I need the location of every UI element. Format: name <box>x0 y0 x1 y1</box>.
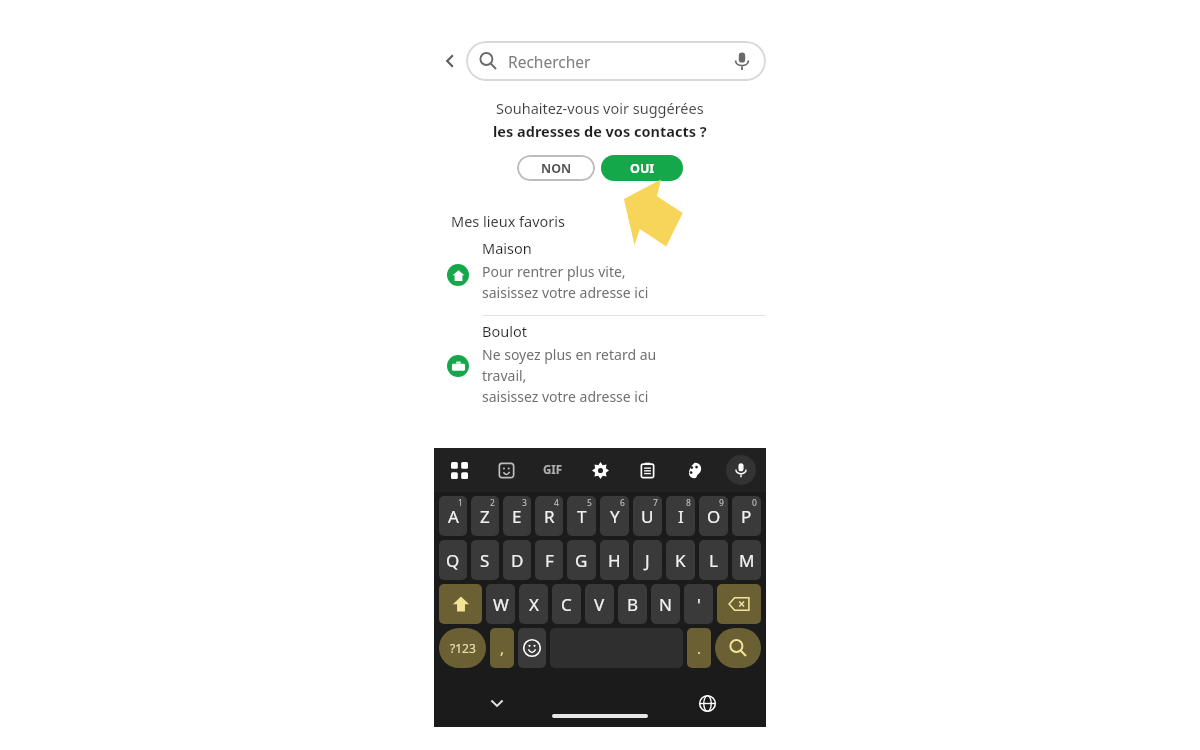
button[interactable]: K <box>666 540 695 580</box>
button[interactable]: C <box>552 584 581 624</box>
staticText: E <box>512 505 522 528</box>
button[interactable]: V <box>585 584 614 624</box>
button[interactable]: G <box>567 540 596 580</box>
button[interactable]: Thèmes <box>679 455 709 485</box>
staticText: Ne soyez plus en retard au <box>482 345 657 364</box>
button[interactable]: L <box>699 540 728 580</box>
staticText: 9 <box>719 497 724 509</box>
staticText: W <box>493 593 509 616</box>
button[interactable]: W <box>486 584 515 624</box>
button[interactable]: N <box>651 584 680 624</box>
staticText: ' <box>697 593 701 616</box>
button[interactable]: . <box>687 628 711 668</box>
button[interactable]: Maj <box>439 584 482 624</box>
staticText: les adresses de vos contacts ? <box>493 121 707 141</box>
button[interactable]: Boulot <box>434 319 766 408</box>
button[interactable]: A <box>439 496 467 536</box>
staticText: Y <box>610 505 620 528</box>
button[interactable]: U <box>633 496 662 536</box>
button[interactable]: S <box>471 540 499 580</box>
staticText: T <box>577 505 587 528</box>
staticText: 7 <box>653 497 658 509</box>
staticText: M <box>739 549 755 572</box>
button[interactable]: OUI <box>601 155 683 181</box>
button[interactable]: Changer de langue <box>692 688 722 718</box>
button[interactable]: E <box>503 496 531 536</box>
staticText: I <box>678 505 684 528</box>
button[interactable]: P <box>732 496 761 536</box>
button[interactable]: Z <box>471 496 499 536</box>
button[interactable]: Y <box>600 496 629 536</box>
staticText: Mes lieux favoris <box>451 211 566 231</box>
staticText: J <box>645 549 650 572</box>
staticText: U <box>641 505 654 528</box>
staticText: D <box>511 549 524 572</box>
button[interactable]: ' <box>684 584 713 624</box>
button[interactable]: Retour <box>434 45 466 77</box>
staticText: 2 <box>490 497 495 509</box>
staticText: Boulot <box>482 321 527 341</box>
button[interactable]: X <box>519 584 548 624</box>
staticText: OUI <box>630 160 655 177</box>
button[interactable]: Micro <box>726 455 756 485</box>
button[interactable]: Masquer le clavier <box>482 688 512 718</box>
button[interactable]: ?123 <box>439 628 486 668</box>
button[interactable]: I <box>666 496 695 536</box>
button[interactable]: Recherche vocale <box>730 49 754 73</box>
button[interactable]: NON <box>517 155 595 181</box>
staticText: ?123 <box>450 640 476 656</box>
staticText: 1 <box>458 497 463 509</box>
staticText: NON <box>541 160 572 177</box>
staticText: N <box>659 593 672 616</box>
staticText: 5 <box>587 497 592 509</box>
staticText: . <box>697 638 702 658</box>
button[interactable]: Supprimer <box>717 584 761 624</box>
staticText: 3 <box>522 497 527 509</box>
button[interactable]: F <box>535 540 563 580</box>
button[interactable]: Rechercher <box>466 41 766 81</box>
staticText: B <box>627 593 639 616</box>
staticText: G <box>575 549 588 572</box>
button[interactable]: J <box>633 540 662 580</box>
button[interactable]: H <box>600 540 629 580</box>
staticText: Maison <box>482 238 532 258</box>
button[interactable]: GIF <box>538 455 568 485</box>
staticText: 8 <box>686 497 691 509</box>
staticText: , <box>500 638 505 658</box>
staticText: L <box>709 549 718 572</box>
button[interactable]: Paramètres <box>585 455 615 485</box>
staticText: P <box>741 505 752 528</box>
staticText: 6 <box>620 497 625 509</box>
button[interactable]: Maison <box>434 236 766 304</box>
button[interactable]: T <box>567 496 596 536</box>
button[interactable]: M <box>732 540 761 580</box>
button[interactable]: D <box>503 540 531 580</box>
staticText: saisissez votre adresse ici <box>482 387 649 406</box>
button[interactable]: B <box>618 584 647 624</box>
staticText: Rechercher <box>508 51 591 72</box>
staticText: H <box>608 549 621 572</box>
button[interactable]: Applications <box>444 455 474 485</box>
button[interactable]: Presse-papiers <box>632 455 662 485</box>
staticText: Z <box>480 505 490 528</box>
staticText: V <box>594 593 605 616</box>
staticText: X <box>529 593 539 616</box>
button[interactable]: Emoji <box>518 628 546 668</box>
button[interactable]: Rechercher <box>715 628 761 668</box>
button[interactable]: , <box>490 628 514 668</box>
button[interactable]: Q <box>439 540 467 580</box>
staticText: R <box>544 505 555 528</box>
staticText: travail, <box>482 366 527 385</box>
button[interactable]: Autocollants <box>491 455 521 485</box>
staticText: A <box>448 505 459 528</box>
staticText: O <box>707 505 721 528</box>
button[interactable]: O <box>699 496 728 536</box>
staticText: K <box>675 549 686 572</box>
staticText: GIF <box>543 462 563 478</box>
staticText: 4 <box>554 497 559 509</box>
button[interactable]: R <box>535 496 563 536</box>
staticText: saisissez votre adresse ici <box>482 283 649 302</box>
staticText: S <box>480 549 490 572</box>
staticText: Q <box>446 549 460 572</box>
